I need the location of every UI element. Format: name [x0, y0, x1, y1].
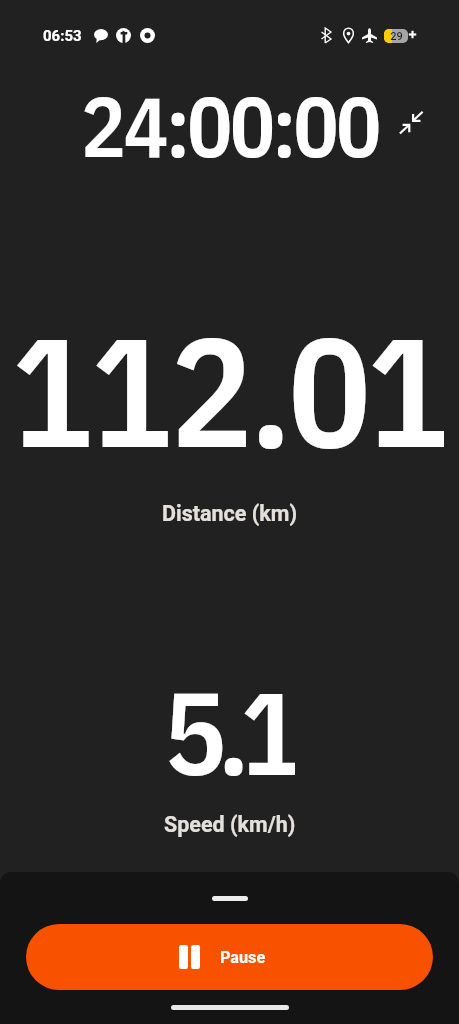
- staticText: 06:53: [43, 27, 82, 45]
- staticText: 29: [390, 30, 403, 43]
- staticText: Pause: [220, 948, 266, 967]
- staticText: 5.1: [164, 656, 295, 781]
- staticText: 112.01: [12, 290, 447, 455]
- button[interactable]: Pause: [26, 924, 433, 990]
- button[interactable]: Collapse timer: [391, 102, 431, 142]
- staticText: 24:00:00: [81, 72, 379, 172]
- staticText: Distance (km): [162, 501, 298, 526]
- staticText: Speed (km/h): [164, 812, 296, 837]
